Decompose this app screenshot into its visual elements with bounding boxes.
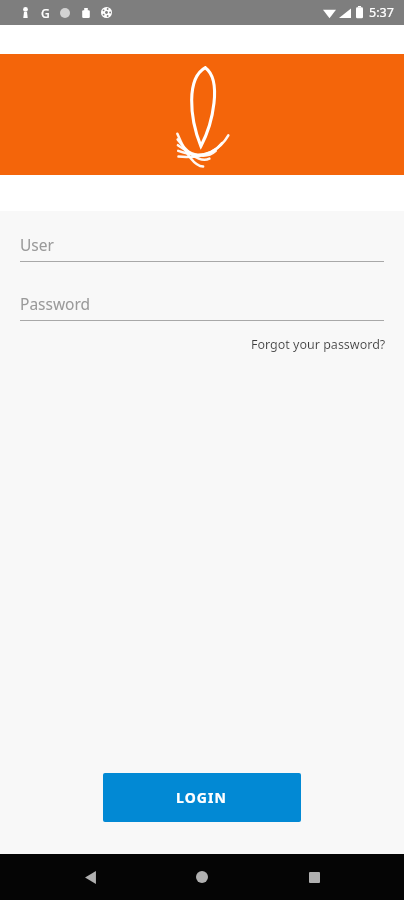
staticText: User (20, 234, 54, 255)
button[interactable]: Forgot your password? (249, 333, 388, 356)
button[interactable]: Password (20, 290, 384, 316)
button[interactable]: Home (180, 855, 224, 899)
button[interactable]: Recent apps (292, 855, 336, 899)
button[interactable]: User (20, 231, 384, 257)
button[interactable]: LOGIN (103, 773, 301, 822)
staticText: Password (20, 293, 91, 314)
staticText: LOGIN (176, 788, 228, 807)
staticText: Forgot your password? (251, 336, 386, 353)
staticText: G (41, 5, 50, 21)
button[interactable]: Back (68, 855, 112, 899)
staticText: 5:37 (369, 4, 394, 21)
